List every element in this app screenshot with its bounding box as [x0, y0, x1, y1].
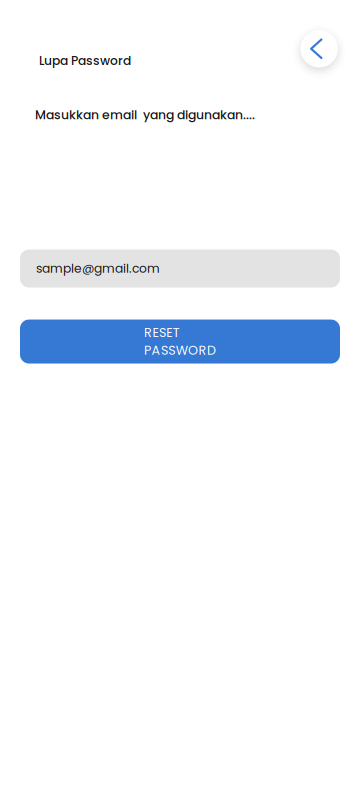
staticText: RESET PASSWORD: [144, 324, 216, 359]
staticText: Lupa Password: [39, 52, 131, 69]
staticText: Masukkan email yang digunakan....: [35, 106, 255, 124]
button[interactable]: RESET PASSWORD: [0, 287, 360, 363]
staticText: sample@gmail.com: [36, 260, 160, 277]
button[interactable]: Back: [300, 30, 338, 67]
